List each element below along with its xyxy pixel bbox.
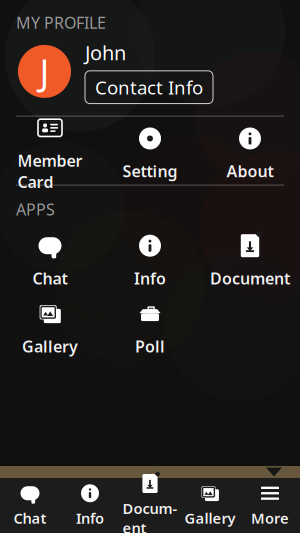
button[interactable]: Chat xyxy=(0,482,60,528)
button[interactable]: Document xyxy=(200,232,300,290)
staticText: About xyxy=(226,160,273,182)
button[interactable]: Member Card xyxy=(0,125,100,183)
staticText: Document xyxy=(122,498,177,533)
button[interactable]: Info xyxy=(60,482,120,528)
staticText: Poll xyxy=(135,336,165,357)
button[interactable]: Document xyxy=(120,482,180,528)
button[interactable]: Info xyxy=(100,232,200,290)
staticText: APPS xyxy=(16,199,55,220)
staticText: MY PROFILE xyxy=(16,12,106,33)
staticText: Gallery xyxy=(184,508,235,528)
staticText: John xyxy=(85,39,126,66)
button[interactable]: Poll xyxy=(100,300,200,358)
staticText: Setting xyxy=(122,160,177,182)
button[interactable]: Setting xyxy=(100,125,200,183)
button[interactable]: Gallery xyxy=(0,300,100,358)
staticText: Contact Info xyxy=(95,75,203,100)
button[interactable]: More xyxy=(240,482,300,528)
staticText: Info xyxy=(134,268,166,289)
button[interactable]: Chat xyxy=(0,232,100,290)
button[interactable]: Profile photo xyxy=(18,45,71,98)
staticText: J xyxy=(39,47,49,95)
staticText: Member Card xyxy=(17,150,82,192)
staticText: Document xyxy=(210,268,290,289)
staticText: Gallery xyxy=(22,336,78,357)
button[interactable]: Gallery xyxy=(180,482,240,528)
staticText: More xyxy=(251,508,289,528)
staticText: Info xyxy=(76,508,104,528)
staticText: Chat xyxy=(32,268,67,289)
button[interactable]: About xyxy=(200,125,300,183)
staticText: Chat xyxy=(13,508,46,528)
button[interactable]: Contact Info xyxy=(85,71,213,104)
